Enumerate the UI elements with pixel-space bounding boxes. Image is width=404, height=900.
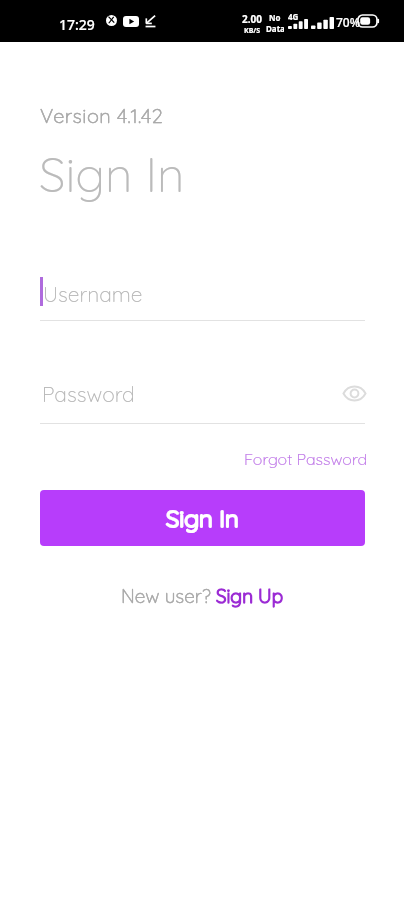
button[interactable]: Forgot Password	[244, 449, 368, 469]
staticText: Version 4.1.42	[40, 103, 164, 128]
button[interactable]: Show password	[340, 379, 368, 407]
staticText: 17:29	[59, 15, 95, 34]
staticText: Username	[43, 281, 143, 307]
staticText: Sign Up	[216, 584, 284, 608]
button[interactable]: Password	[42, 381, 135, 407]
staticText: Version 4.1.42	[40, 103, 164, 128]
staticText: New user?	[121, 584, 216, 608]
staticText: New user?	[121, 584, 216, 608]
staticText: Forgot Password	[244, 449, 368, 469]
staticText: No	[269, 12, 281, 23]
staticText: 70%	[336, 14, 360, 30]
staticText: Data	[266, 23, 284, 34]
staticText: Forgot Password	[244, 449, 368, 469]
button[interactable]: Sign In	[40, 490, 365, 546]
staticText: Sign Up	[216, 584, 284, 608]
staticText: Sign In	[166, 503, 239, 533]
staticText: KB/S	[244, 26, 261, 36]
staticText: 4G	[288, 11, 299, 22]
staticText: Sign In	[39, 144, 185, 204]
staticText: 2.00	[242, 12, 262, 26]
button[interactable]: Username	[40, 274, 365, 321]
button[interactable]: Sign Up	[216, 584, 284, 608]
staticText: Sign In	[166, 503, 239, 533]
